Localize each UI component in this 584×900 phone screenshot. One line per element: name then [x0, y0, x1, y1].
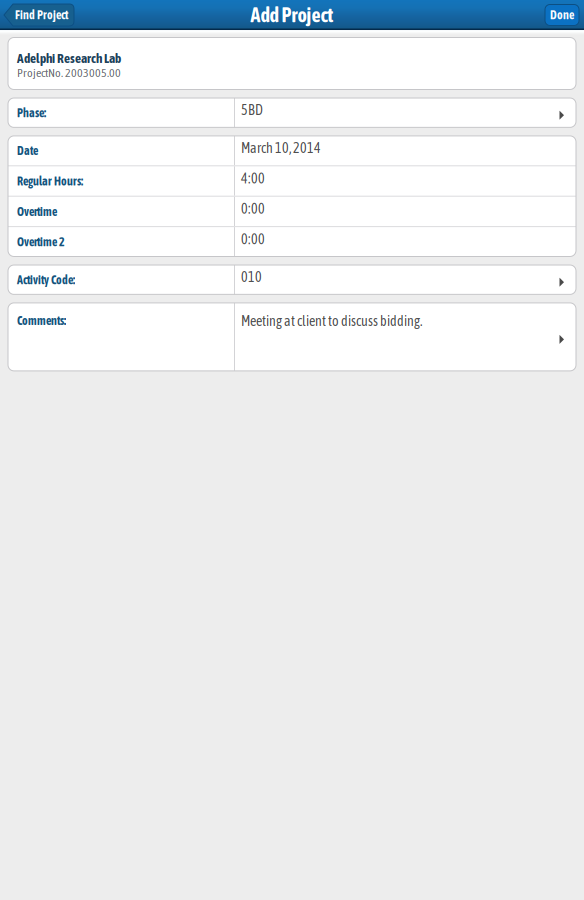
button[interactable]: Date: [8, 136, 576, 165]
button[interactable]: Comments:: [8, 303, 576, 371]
staticText: Date: [17, 144, 38, 158]
button[interactable]: Activity Code:: [8, 265, 576, 294]
button[interactable]: Regular Hours:: [8, 166, 576, 196]
staticText: Done: [550, 8, 574, 22]
button[interactable]: Overtime 2: [8, 227, 576, 256]
button[interactable]: Find Project: [4, 4, 74, 26]
button[interactable]: Phase:: [8, 98, 576, 127]
staticText: ProjectNo. 2003005.00: [17, 66, 121, 80]
staticText: 5BD: [241, 102, 263, 118]
staticText: 010: [241, 269, 262, 285]
staticText: Activity Code:: [17, 273, 75, 287]
staticText: Meeting at client to discuss bidding.: [241, 313, 422, 329]
staticText: Adelphi Research Lab: [17, 50, 121, 66]
staticText: Add Project: [250, 3, 333, 26]
staticText: Overtime 2: [17, 235, 65, 249]
staticText: Comments:: [17, 314, 66, 328]
staticText: Find Project: [15, 8, 68, 22]
staticText: Regular Hours:: [17, 174, 83, 188]
staticText: Phase:: [17, 106, 46, 120]
button[interactable]: Done: [545, 4, 579, 25]
staticText: 0:00: [241, 231, 265, 247]
staticText: Overtime: [17, 205, 57, 218]
staticText: 4:00: [241, 170, 265, 186]
staticText: 0:00: [241, 201, 265, 217]
staticText: March 10, 2014: [241, 140, 321, 156]
button[interactable]: Overtime: [8, 197, 576, 226]
